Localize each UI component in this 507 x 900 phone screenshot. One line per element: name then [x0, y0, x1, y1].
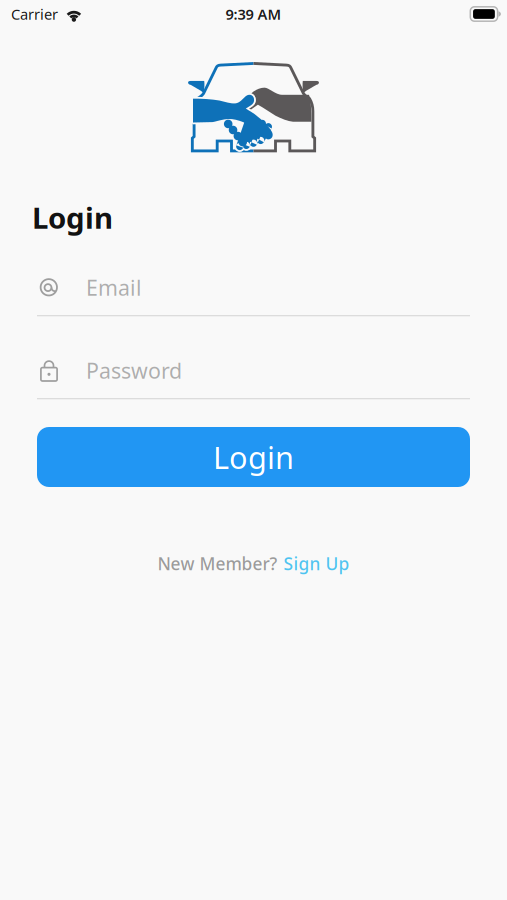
staticText: 9:39 AM [225, 4, 281, 24]
staticText: Password [86, 356, 182, 385]
button[interactable]: Login [37, 427, 470, 487]
staticText: Login [213, 437, 294, 477]
button[interactable]: New Member? [157, 552, 349, 575]
staticText: Login [32, 198, 113, 237]
staticText: Carrier [11, 4, 58, 24]
staticText: New Member? [157, 552, 277, 575]
staticText: Email [86, 273, 142, 302]
staticText: Sign Up [283, 552, 349, 575]
